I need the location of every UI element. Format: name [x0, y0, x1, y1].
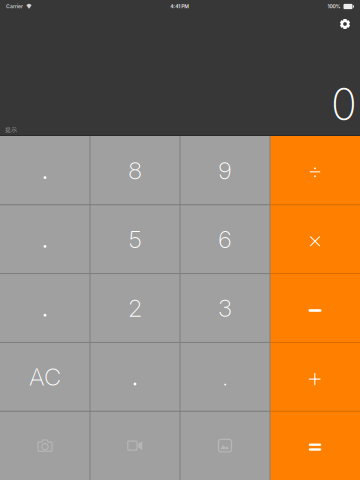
button[interactable]: 8	[90, 136, 180, 205]
button[interactable]: 9	[180, 136, 270, 205]
button[interactable]: Decimal point	[0, 274, 90, 342]
button[interactable]: Settings	[330, 13, 360, 35]
button[interactable]: 5	[90, 205, 180, 274]
staticText: 3	[218, 293, 232, 322]
staticText: 9	[218, 156, 232, 185]
staticText: AC	[29, 362, 61, 391]
button[interactable]: Video	[90, 411, 180, 480]
staticText: Carrier	[6, 3, 23, 9]
button[interactable]: Camera	[0, 411, 90, 480]
staticText: .	[222, 362, 228, 391]
staticText: 100%	[327, 3, 340, 9]
staticText: 4:41 PM	[170, 3, 189, 9]
staticText: 6	[218, 225, 232, 254]
button[interactable]: Equals	[270, 411, 360, 480]
staticText: 5	[128, 225, 141, 254]
staticText: 2	[128, 293, 142, 322]
button[interactable]: 2	[90, 274, 180, 342]
button[interactable]: Minus	[270, 274, 360, 342]
button[interactable]: 6	[180, 205, 270, 274]
button[interactable]: +	[270, 342, 360, 411]
button[interactable]: Photo Library	[180, 411, 270, 480]
button[interactable]: Decimal point	[0, 205, 90, 274]
staticText: +	[306, 361, 323, 393]
staticText: 0	[331, 78, 357, 130]
button[interactable]: AC	[0, 342, 90, 411]
staticText: ÷	[307, 156, 322, 185]
staticText: 8	[128, 156, 142, 185]
button[interactable]: Decimal point	[90, 342, 180, 411]
staticText: 提示	[5, 126, 17, 134]
button[interactable]: ×	[270, 205, 360, 274]
button[interactable]: 3	[180, 274, 270, 342]
staticText: ×	[307, 225, 322, 254]
button[interactable]: ÷	[270, 136, 360, 205]
button[interactable]: Decimal point	[0, 136, 90, 205]
button[interactable]: .	[180, 342, 270, 411]
